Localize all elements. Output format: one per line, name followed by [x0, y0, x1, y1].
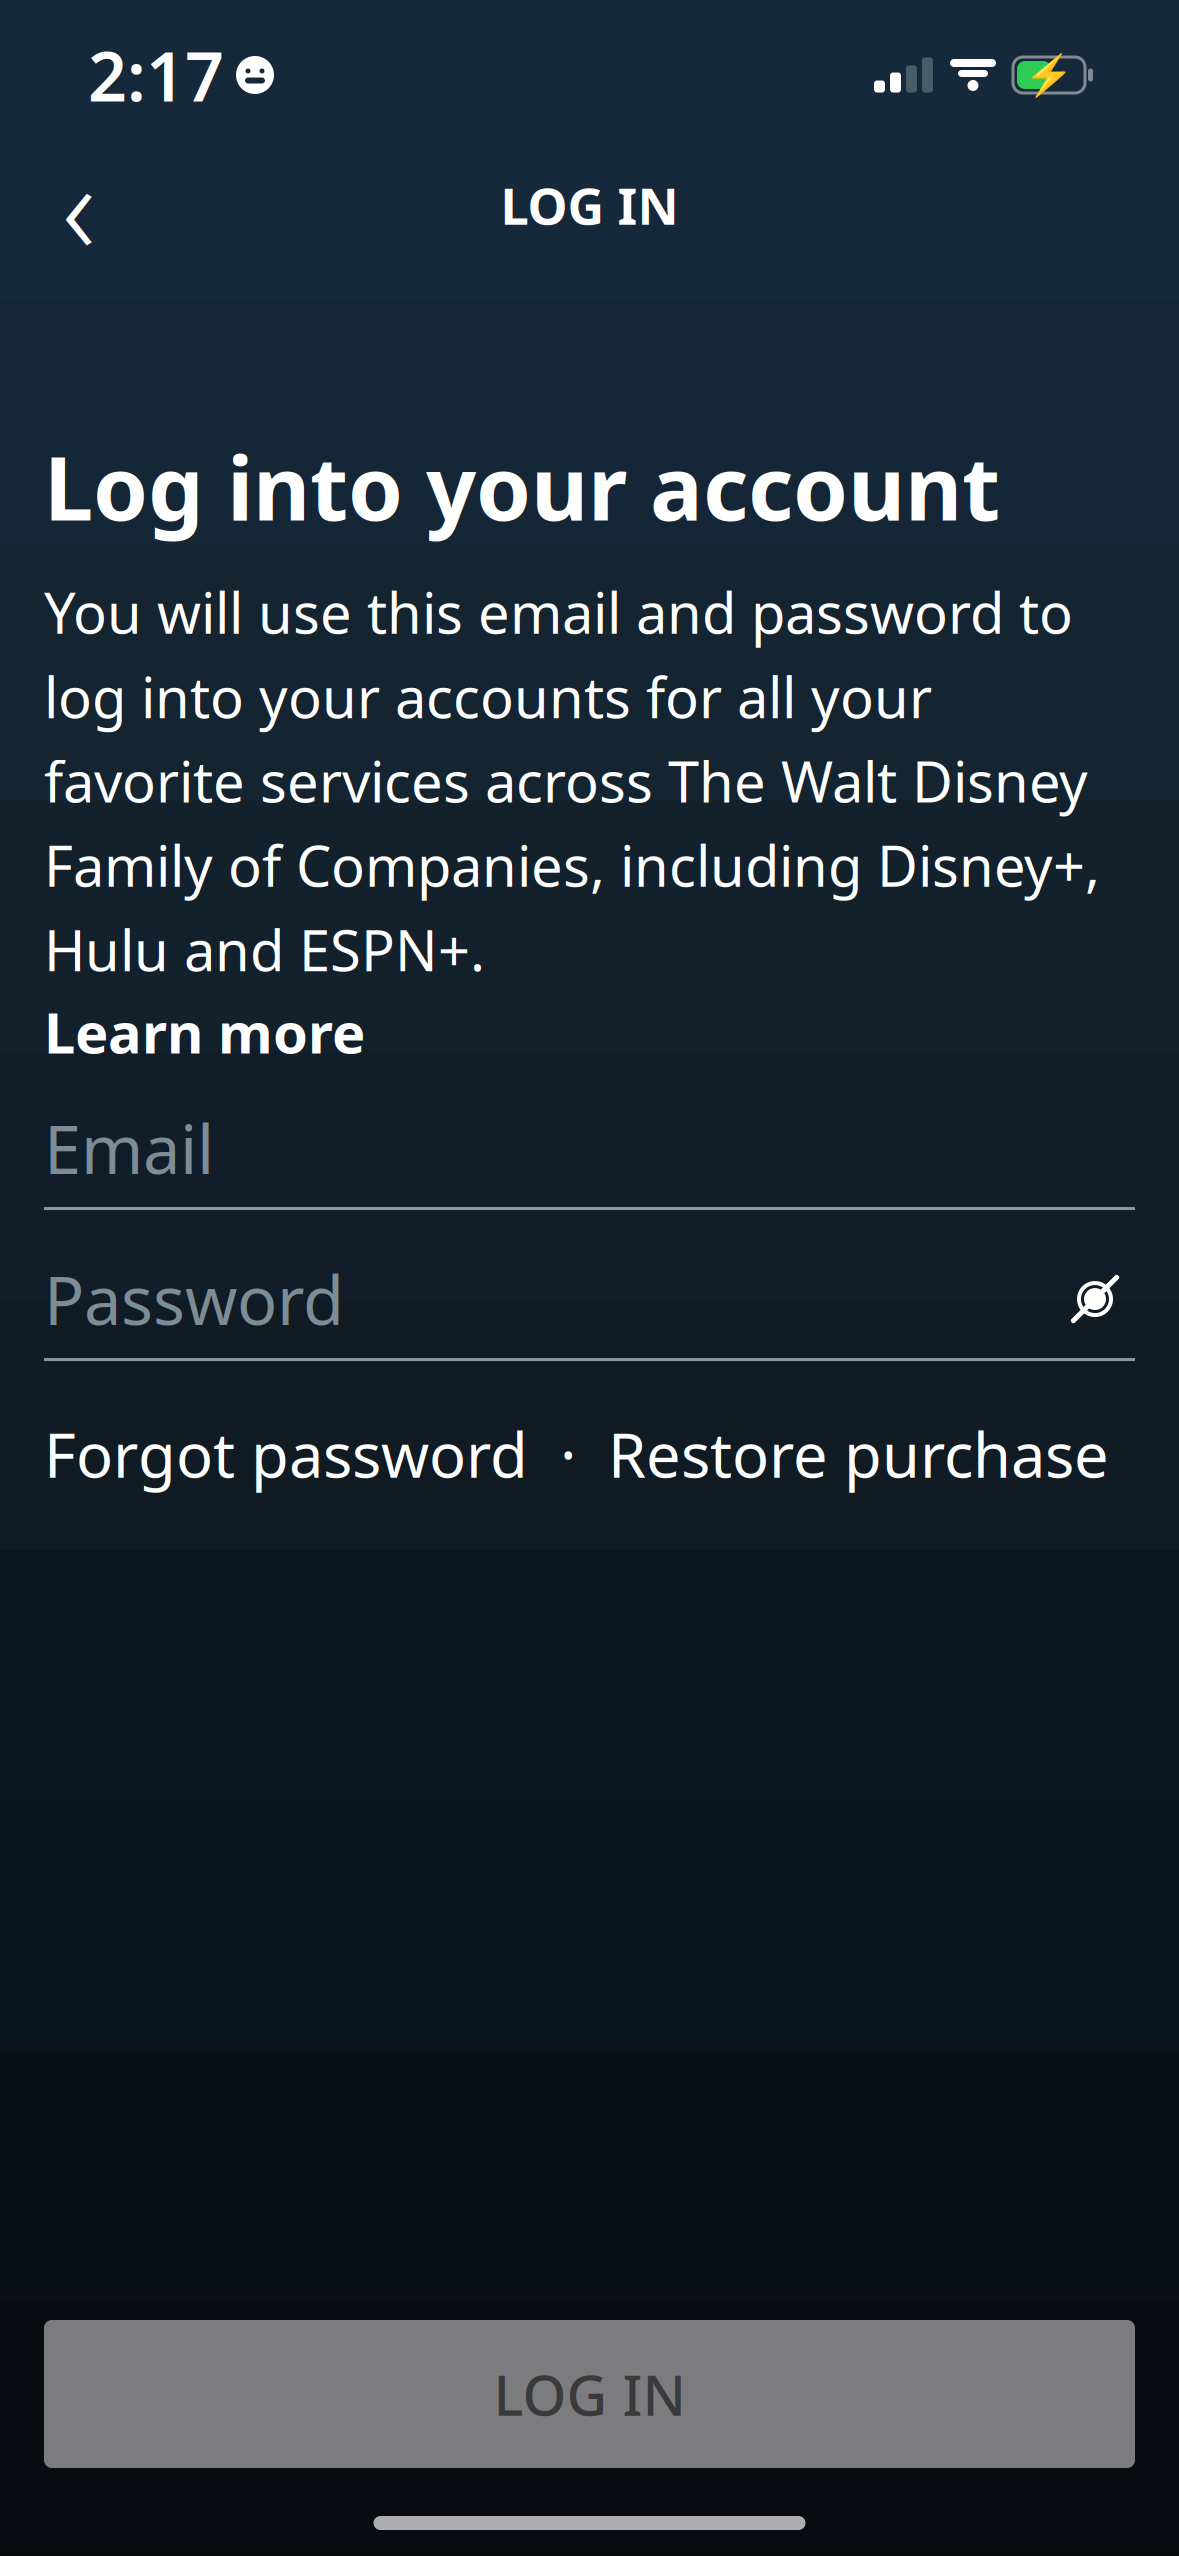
- staticText: Learn more: [44, 995, 365, 1069]
- staticText: ‹: [62, 120, 96, 290]
- button[interactable]: Restore purchase: [608, 1413, 1109, 1495]
- staticText: Restore purchase: [608, 1413, 1109, 1495]
- button[interactable]: Learn more: [44, 995, 365, 1069]
- staticText: ⚡: [1024, 52, 1074, 98]
- staticText: Password: [44, 1255, 344, 1343]
- button[interactable]: Back: [24, 150, 134, 260]
- staticText: LOG IN: [493, 2357, 685, 2431]
- button[interactable]: Show password: [1055, 1262, 1135, 1336]
- button[interactable]: LOG IN: [44, 2320, 1135, 2468]
- staticText: You will use this email and password to …: [44, 575, 1100, 987]
- staticText: Forgot password: [44, 1413, 528, 1495]
- button[interactable]: Forgot password: [44, 1413, 528, 1495]
- staticText: LOG IN: [500, 171, 678, 239]
- staticText: 2:17: [88, 30, 224, 120]
- staticText: Email: [44, 1104, 214, 1192]
- staticText: Log into your account: [44, 428, 1000, 545]
- staticText: ·: [528, 1413, 608, 1495]
